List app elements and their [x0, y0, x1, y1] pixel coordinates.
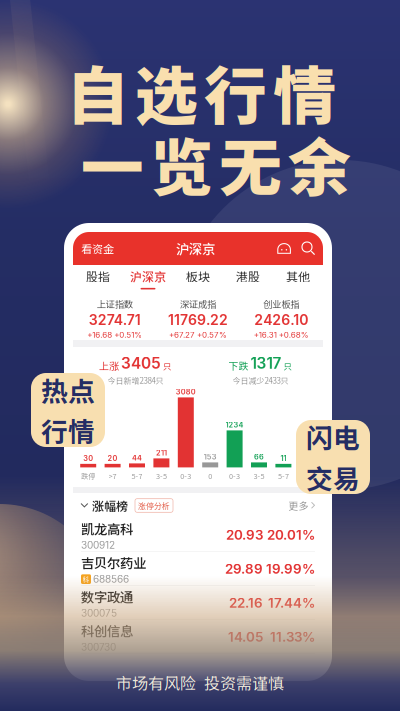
staticText: 更多 [288, 498, 308, 513]
staticText: 14.05 [228, 629, 263, 645]
button[interactable]: 涨幅榜 [81, 497, 128, 514]
staticText: 港股 [236, 267, 260, 285]
staticText: >7 [304, 470, 312, 481]
staticText: 20 [108, 454, 118, 463]
staticText: 153 [204, 452, 217, 461]
staticText: 0-3 [229, 470, 240, 481]
staticText: 跌停 [81, 470, 95, 481]
staticText: 交易 [306, 458, 360, 497]
staticText: 11.33% [270, 629, 315, 645]
staticText: 凯龙高科 [81, 519, 133, 538]
staticText: 沪深京 [130, 267, 166, 285]
staticText: 5-7 [131, 470, 142, 481]
staticText: +16.31 +0.68% [254, 330, 309, 340]
staticText: 17.44% [268, 595, 315, 611]
staticText: 3274.71 [89, 311, 141, 328]
staticText: 5-7 [278, 470, 289, 481]
button[interactable]: 数字政通 [73, 586, 323, 620]
staticText: 科创信息 [81, 621, 133, 640]
staticText: 深证成指 [180, 297, 216, 310]
staticText: 688566 [93, 573, 129, 585]
staticText: >7 [109, 470, 117, 481]
staticText: 300730 [81, 641, 116, 653]
staticText: 29.89 [225, 561, 263, 577]
button[interactable]: 涨停分析 [135, 499, 173, 512]
staticText: 11769.22 [168, 311, 228, 328]
staticText: 3405 [121, 354, 161, 373]
staticText: 今日减少2433只 [232, 375, 288, 386]
button[interactable]: 吉贝尔药业 [73, 552, 323, 586]
staticText: 19.99% [266, 561, 315, 577]
staticText: 2426.10 [254, 311, 308, 328]
staticText: 22.16 [229, 595, 263, 611]
staticText: 上证指数 [97, 297, 133, 310]
staticText: +16.68 +0.51% [87, 330, 142, 340]
staticText: 66 [254, 452, 264, 461]
button[interactable]: AI assistant [277, 243, 291, 254]
staticText: 只 [283, 360, 292, 372]
staticText: 其他 [286, 267, 310, 285]
staticText: 沪深京 [176, 239, 215, 258]
staticText: 自选行情 [66, 46, 336, 137]
staticText: 30 [83, 454, 93, 463]
staticText: 只 [163, 360, 172, 372]
staticText: 热点 [41, 370, 95, 409]
staticText: 涨停分析 [138, 500, 170, 511]
staticText: 涨幅榜 [92, 497, 128, 514]
staticText: 数字政通 [81, 587, 133, 606]
staticText: 今日新增2384只 [107, 375, 163, 386]
staticText: 科 [82, 574, 89, 584]
button[interactable]: 股指 [73, 265, 123, 292]
staticText: 300075 [81, 607, 117, 619]
staticText: 市场有风险 投资需谨慎 [116, 671, 284, 694]
button[interactable]: 更多 [288, 498, 315, 513]
staticText: +67.27 +0.57% [169, 330, 227, 340]
button[interactable]: 沪深京 [123, 265, 173, 292]
staticText: 20.93 [226, 527, 263, 543]
staticText: 1234 [226, 420, 244, 429]
staticText: 11 [280, 454, 286, 463]
button[interactable]: Search [291, 242, 315, 255]
staticText: 1317 [250, 354, 281, 373]
button[interactable]: 看资金 [81, 235, 114, 262]
staticText: 211 [156, 448, 167, 457]
button[interactable]: 科创信息 [73, 620, 323, 654]
staticText: 创业板指 [263, 297, 299, 310]
staticText: 股指 [86, 267, 110, 285]
staticText: 吉贝尔药业 [81, 553, 146, 572]
staticText: 闪电 [306, 417, 360, 456]
staticText: 3-5 [253, 470, 264, 481]
button[interactable]: 凯龙高科 [73, 518, 323, 552]
staticText: 板块 [186, 267, 210, 285]
staticText: 行情 [41, 411, 95, 450]
staticText: 3-5 [156, 470, 167, 481]
staticText: 一览无余 [81, 118, 351, 209]
staticText: 上涨 [99, 358, 119, 373]
staticText: 3080 [176, 387, 196, 396]
button[interactable]: 其他 [273, 265, 323, 292]
staticText: 44 [132, 453, 142, 462]
staticText: 下跌 [228, 358, 248, 373]
button[interactable]: 板块 [173, 265, 223, 292]
staticText: 0-3 [180, 470, 191, 481]
staticText: 0 [208, 470, 212, 481]
staticText: 看资金 [81, 240, 114, 257]
staticText: 300912 [81, 539, 115, 551]
button[interactable]: 港股 [223, 265, 273, 292]
staticText: 20.01% [267, 527, 315, 543]
